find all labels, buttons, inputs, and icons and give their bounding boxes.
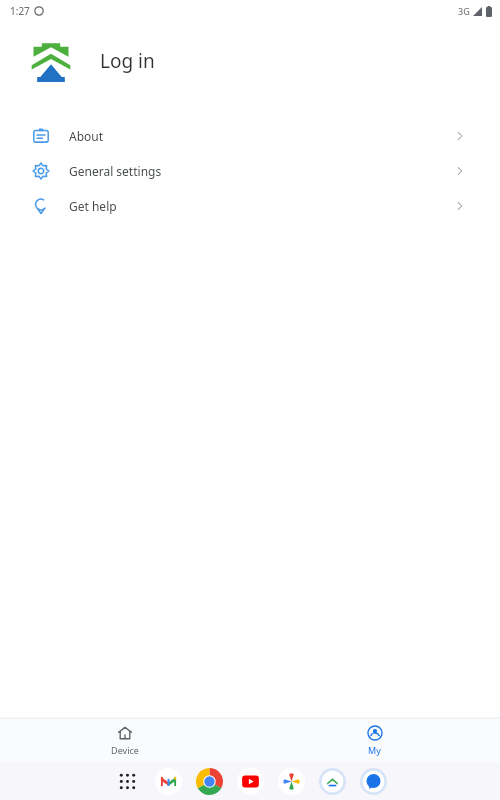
staticText: Log in xyxy=(100,48,155,74)
button[interactable]: YouTube xyxy=(237,768,264,795)
staticText: 1:27 xyxy=(10,4,30,18)
staticText: General settings xyxy=(69,163,162,179)
button[interactable]: Chrome xyxy=(196,768,223,795)
button[interactable]: General settings xyxy=(12,153,488,188)
button[interactable]: Log in xyxy=(100,48,155,74)
button[interactable]: Apps xyxy=(114,768,141,795)
button[interactable]: My xyxy=(312,718,437,762)
staticText: Get help xyxy=(69,198,117,214)
button[interactable]: Messages xyxy=(360,768,387,795)
staticText: 3G xyxy=(458,5,470,17)
button[interactable]: App xyxy=(319,768,346,795)
staticText: Device xyxy=(111,744,139,756)
staticText: My xyxy=(368,744,381,756)
button[interactable]: Photos xyxy=(278,768,305,795)
button[interactable]: Gmail xyxy=(155,768,182,795)
button[interactable]: Device xyxy=(62,718,187,762)
button[interactable]: Get help xyxy=(12,188,488,223)
button[interactable]: About xyxy=(12,118,488,153)
staticText: About xyxy=(69,128,104,144)
